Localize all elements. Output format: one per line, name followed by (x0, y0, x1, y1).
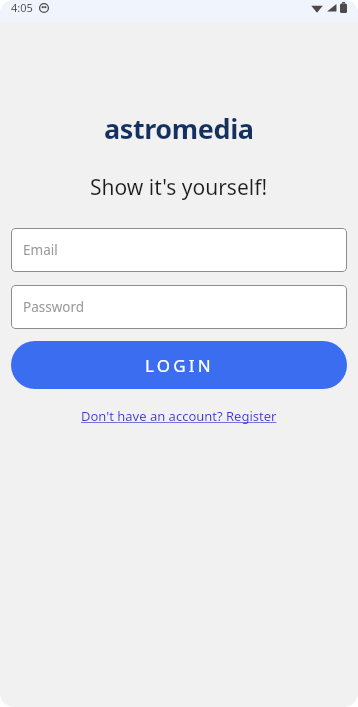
staticText: 4:05 (11, 0, 33, 15)
staticText: astromedia (104, 110, 254, 147)
button[interactable]: LOGIN (11, 341, 347, 389)
staticText: Show it's yourself! (90, 173, 268, 202)
staticText: LOGIN (145, 354, 214, 377)
staticText: Email (23, 241, 58, 259)
staticText: Don't have an account? Register (81, 407, 277, 425)
button[interactable]: Email (11, 228, 347, 272)
button[interactable]: Don't have an account? Register (77, 405, 281, 427)
button[interactable]: Password (11, 285, 347, 329)
staticText: Password (23, 298, 85, 316)
